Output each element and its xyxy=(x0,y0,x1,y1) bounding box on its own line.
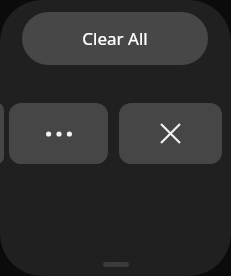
button[interactable]: Clear All xyxy=(22,12,208,65)
staticText: Clear All xyxy=(82,27,148,50)
button[interactable]: Close xyxy=(119,103,222,164)
button[interactable]: More options xyxy=(9,103,108,164)
